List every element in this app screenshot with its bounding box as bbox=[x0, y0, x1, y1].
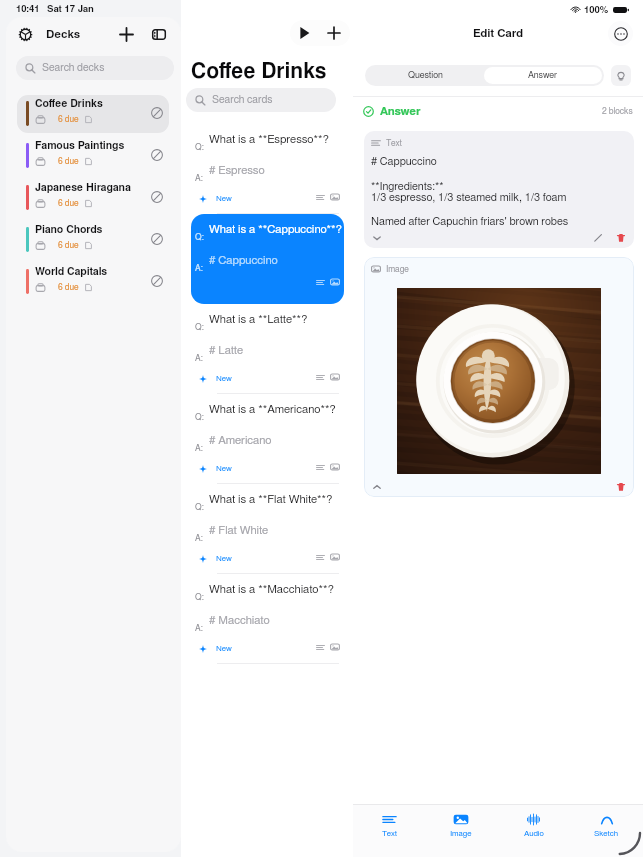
button[interactable]: New bbox=[195, 191, 235, 207]
staticText: A: bbox=[195, 264, 203, 273]
button[interactable]: New bbox=[195, 371, 235, 387]
staticText: World Capitals bbox=[35, 267, 108, 278]
staticText: Decks bbox=[46, 29, 81, 40]
staticText: 10:41 bbox=[16, 4, 40, 13]
button[interactable]: Search cards bbox=[186, 88, 336, 112]
button[interactable]: Delete image block bbox=[614, 480, 628, 494]
button[interactable]: Study deck bbox=[290, 20, 317, 46]
staticText: # Flat White bbox=[209, 525, 269, 536]
staticText: What is a **Macchiato**? bbox=[209, 584, 334, 595]
staticText: Japanese Hiragana bbox=[35, 183, 131, 194]
staticText: A: bbox=[195, 534, 203, 543]
staticText: 100% bbox=[584, 5, 609, 14]
staticText: # Espresso bbox=[209, 165, 265, 176]
button[interactable]: Delete text block bbox=[614, 231, 628, 245]
staticText: A: bbox=[195, 174, 203, 183]
staticText: Text bbox=[382, 830, 397, 838]
button[interactable]: Add deck bbox=[115, 23, 137, 45]
staticText: Famous Paintings bbox=[35, 141, 125, 152]
staticText: 6 due bbox=[58, 241, 79, 250]
button[interactable]: Toggle sidebar bbox=[148, 23, 170, 45]
button[interactable]: Piano Chords bbox=[17, 221, 169, 259]
button[interactable]: Deck options bbox=[149, 105, 165, 121]
staticText: 6 due bbox=[58, 283, 79, 292]
staticText: 6 due bbox=[58, 115, 79, 124]
button[interactable]: Q: bbox=[191, 304, 344, 394]
staticText: # Latte bbox=[209, 345, 244, 356]
staticText: Text bbox=[386, 139, 402, 148]
staticText: New bbox=[216, 375, 232, 383]
button[interactable]: New bbox=[195, 461, 235, 477]
staticText: What is a **Americano**? bbox=[209, 404, 336, 415]
staticText: 2 blocks bbox=[602, 107, 633, 116]
button[interactable]: Edit text block bbox=[591, 231, 605, 245]
button[interactable]: New bbox=[195, 641, 235, 657]
staticText: # Macchiato bbox=[209, 615, 270, 626]
staticText: Question bbox=[408, 71, 443, 80]
staticText: Named after Capuchin friars' brown robes bbox=[371, 216, 569, 227]
staticText: What is a **Flat White**? bbox=[209, 494, 333, 505]
button[interactable]: More options bbox=[608, 21, 633, 46]
staticText: Image bbox=[450, 830, 472, 838]
staticText: Q: bbox=[195, 323, 204, 332]
button[interactable]: World Capitals bbox=[17, 263, 169, 301]
button[interactable]: Famous Paintings bbox=[17, 137, 169, 175]
staticText: New bbox=[216, 195, 232, 203]
button[interactable]: Hint bbox=[611, 65, 631, 86]
staticText: Coffee Drinks bbox=[191, 61, 327, 82]
staticText: New bbox=[216, 555, 232, 563]
button[interactable]: Q: bbox=[191, 214, 344, 304]
staticText: Edit Card bbox=[473, 28, 524, 39]
staticText: What is a **Latte**? bbox=[209, 314, 308, 325]
button[interactable]: Answer bbox=[484, 67, 602, 84]
button[interactable]: Text bbox=[353, 805, 425, 857]
button[interactable]: Sketch bbox=[570, 805, 643, 857]
staticText: A: bbox=[195, 354, 203, 363]
staticText: Image bbox=[386, 265, 409, 274]
staticText: A: bbox=[195, 624, 203, 633]
staticText: What is a **Espresso**? bbox=[209, 134, 329, 145]
button[interactable]: Q: bbox=[191, 484, 344, 574]
button[interactable]: Audio bbox=[497, 805, 570, 857]
button[interactable]: Coffee Drinks bbox=[17, 95, 169, 133]
button[interactable]: Deck options bbox=[149, 189, 165, 205]
staticText: Q: bbox=[195, 233, 204, 242]
staticText: Search decks bbox=[42, 63, 105, 74]
button[interactable]: Deck options bbox=[149, 273, 165, 289]
staticText: 6 due bbox=[58, 199, 79, 208]
button[interactable]: Settings bbox=[14, 23, 36, 45]
staticText: New bbox=[216, 645, 232, 653]
button[interactable]: Q: bbox=[191, 394, 344, 484]
button[interactable]: Deck options bbox=[149, 231, 165, 247]
staticText: Search cards bbox=[212, 95, 273, 106]
button[interactable]: Japanese Hiragana bbox=[17, 179, 169, 217]
button[interactable]: New bbox=[195, 551, 235, 567]
button[interactable]: Text bbox=[364, 131, 634, 248]
button[interactable]: Add card bbox=[317, 20, 350, 46]
staticText: 6 due bbox=[58, 157, 79, 166]
staticText: # Cappuccino bbox=[209, 255, 278, 266]
button[interactable]: Image bbox=[425, 805, 497, 857]
staticText: Coffee Drinks bbox=[35, 99, 103, 110]
staticText: 1/3 espresso, 1/3 steamed milk, 1/3 foam bbox=[371, 192, 567, 203]
button[interactable]: Collapse image block bbox=[370, 480, 384, 494]
staticText: A: bbox=[195, 444, 203, 453]
button[interactable]: Deck options bbox=[149, 147, 165, 163]
staticText: # Cappuccino bbox=[371, 156, 437, 167]
staticText: Q: bbox=[195, 143, 204, 152]
staticText: Sat 17 Jan bbox=[47, 4, 94, 13]
button[interactable]: Q: bbox=[191, 574, 344, 664]
staticText: # Americano bbox=[209, 435, 272, 446]
button[interactable]: Collapse text block bbox=[370, 231, 384, 245]
staticText: Sketch bbox=[594, 830, 619, 838]
staticText: Q: bbox=[195, 413, 204, 422]
staticText: Answer bbox=[528, 71, 558, 80]
staticText: Audio bbox=[524, 830, 544, 838]
staticText: Q: bbox=[195, 503, 204, 512]
staticText: **Ingredients:** bbox=[371, 181, 444, 192]
button[interactable]: Question bbox=[367, 67, 484, 84]
staticText: What is a **Cappuccino**? bbox=[209, 224, 342, 235]
button[interactable]: Q: bbox=[191, 124, 344, 214]
button[interactable]: Search decks bbox=[16, 56, 174, 80]
button[interactable]: Image bbox=[364, 257, 634, 497]
